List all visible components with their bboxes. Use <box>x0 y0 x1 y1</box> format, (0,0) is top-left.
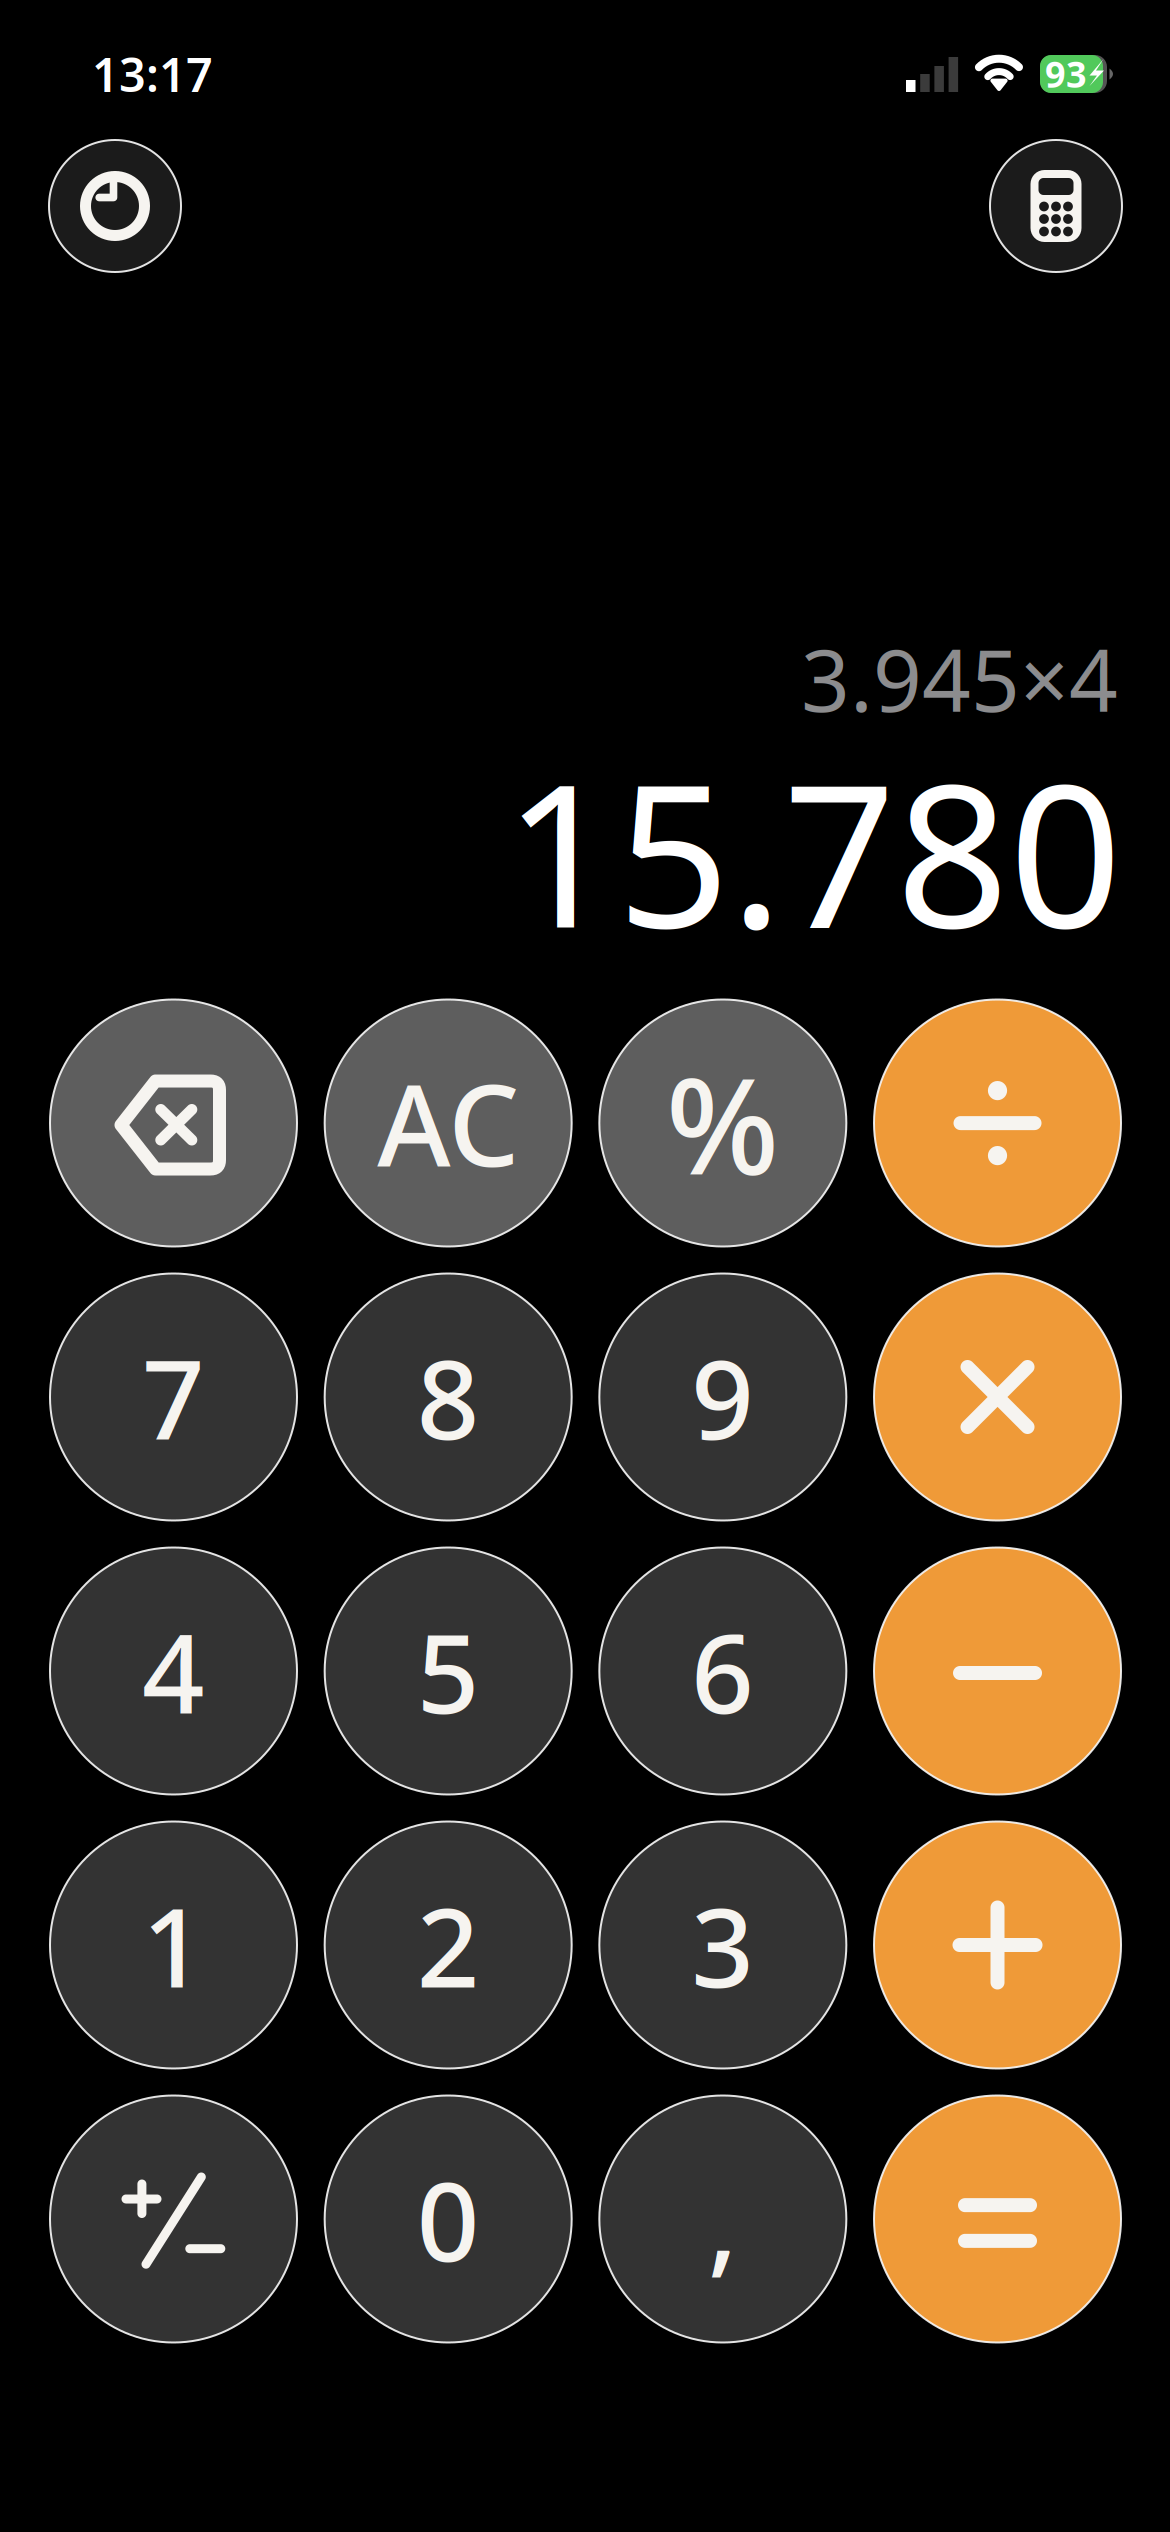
staticText: 4 <box>142 1598 205 1744</box>
button[interactable]: AC <box>325 999 572 1246</box>
button[interactable]: 5 <box>325 1547 572 1794</box>
button[interactable]: , <box>599 2095 846 2342</box>
staticText: 6 <box>691 1598 754 1744</box>
staticText: 93 <box>1045 50 1087 98</box>
button[interactable]: Divide <box>874 999 1121 1246</box>
staticText: 2 <box>417 1872 480 2018</box>
button[interactable]: 3 <box>599 1821 846 2068</box>
button[interactable]: Delete <box>50 999 297 1246</box>
staticText: , <box>708 2148 738 2294</box>
button[interactable]: 2 <box>325 1821 572 2068</box>
staticText: 5 <box>417 1598 480 1744</box>
button[interactable]: 4 <box>50 1547 297 1794</box>
staticText: 13:17 <box>92 43 213 105</box>
button[interactable]: 7 <box>50 1273 297 1520</box>
button[interactable]: 9 <box>599 1273 846 1520</box>
button[interactable]: History <box>49 140 181 272</box>
staticText: 7 <box>142 1324 205 1470</box>
staticText: 8 <box>417 1324 480 1470</box>
button[interactable]: 1 <box>50 1821 297 2068</box>
button[interactable]: Multiply <box>874 1273 1121 1520</box>
staticText: AC <box>377 1049 519 1197</box>
button[interactable]: 6 <box>599 1547 846 1794</box>
staticText: 3.945×4 <box>801 622 1118 735</box>
button[interactable]: Plus <box>874 1821 1121 2068</box>
button[interactable]: 8 <box>325 1273 572 1520</box>
button[interactable]: Plus minus <box>50 2095 297 2342</box>
button[interactable]: % <box>599 999 846 1246</box>
button[interactable]: Calculator <box>990 140 1122 272</box>
button[interactable]: 0 <box>325 2095 572 2342</box>
button[interactable]: Equals <box>874 2095 1121 2342</box>
staticText: 0 <box>417 2146 480 2292</box>
staticText: % <box>666 1034 780 1212</box>
staticText: 1 <box>142 1872 205 2018</box>
staticText: 9 <box>691 1324 754 1470</box>
button[interactable]: Minus <box>874 1547 1121 1794</box>
staticText: 15.780 <box>504 720 1122 982</box>
staticText: 3 <box>691 1872 754 2018</box>
